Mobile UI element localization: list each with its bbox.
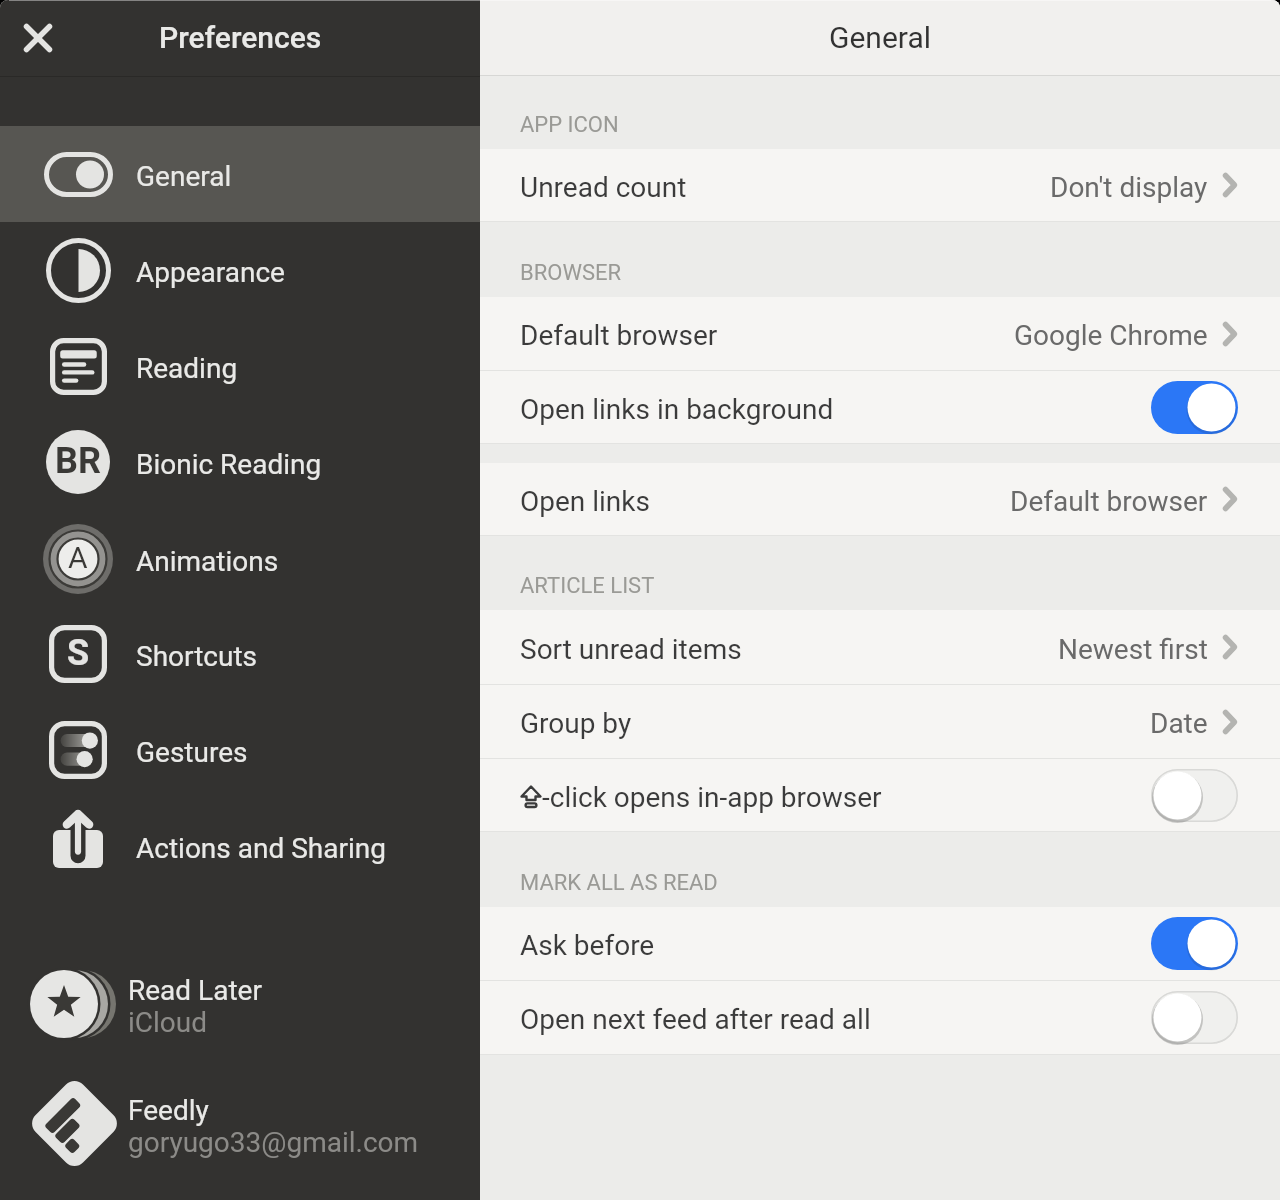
staticText: General (829, 20, 932, 55)
staticText: Ask before (520, 929, 655, 962)
staticText: Google Chrome (1014, 319, 1208, 352)
staticText: MARK ALL AS READ (520, 870, 718, 896)
button[interactable]: Read Later (0, 960, 480, 1048)
staticText: Newest first (1058, 633, 1208, 666)
staticText: Sort unread items (520, 633, 742, 666)
staticText: Appearance (136, 256, 285, 289)
staticText: Preferences (159, 20, 322, 55)
staticText: Reading (136, 352, 238, 385)
button[interactable]: Close (15, 15, 61, 61)
staticText: Group by (520, 707, 632, 740)
button[interactable]: Unread count (480, 149, 1280, 221)
button[interactable]: S (0, 606, 480, 702)
staticText: APP ICON (520, 112, 619, 138)
button[interactable]: Open links in background (480, 371, 1280, 443)
staticText: Date (1150, 707, 1208, 740)
staticText: Default browser (1010, 485, 1208, 518)
staticText: Animations (136, 545, 279, 578)
staticText: BROWSER (520, 260, 622, 286)
button[interactable]: Appearance (0, 222, 480, 318)
button[interactable]: Feedly (0, 1080, 480, 1168)
staticText: Default browser (520, 319, 718, 352)
staticText: BR (55, 440, 101, 482)
staticText: General (136, 160, 232, 193)
button[interactable]: -click opens in-app browser (480, 759, 1280, 831)
staticText: A (68, 540, 88, 575)
button[interactable]: Group by (480, 685, 1280, 758)
staticText: Read Later (128, 974, 262, 1007)
staticText: Don't display (1050, 171, 1208, 204)
button[interactable]: Open links (480, 463, 1280, 535)
button[interactable]: Gestures (0, 702, 480, 798)
staticText: Feedly (128, 1094, 209, 1127)
staticText: -click opens in-app browser (542, 781, 882, 814)
staticText: Shortcuts (136, 640, 258, 673)
staticText: Actions and Sharing (136, 832, 386, 865)
staticText: S (67, 632, 90, 674)
staticText: Bionic Reading (136, 448, 322, 481)
button[interactable]: Sort unread items (480, 610, 1280, 684)
button[interactable]: Open next feed after read all (480, 981, 1280, 1054)
button[interactable]: Ask before (480, 907, 1280, 980)
button[interactable]: On (1151, 381, 1238, 434)
staticText: goryugo33@gmail.com (128, 1126, 419, 1159)
button[interactable]: A (0, 511, 480, 607)
button[interactable]: Actions and Sharing (0, 798, 480, 894)
button[interactable]: General (0, 126, 480, 222)
button[interactable]: Default browser (480, 297, 1280, 370)
button[interactable]: On (1151, 917, 1238, 970)
button[interactable]: BR (0, 414, 480, 510)
button[interactable]: Off (1151, 991, 1238, 1044)
button[interactable]: Reading (0, 318, 480, 414)
staticText: Gestures (136, 736, 248, 769)
staticText: Open links in background (520, 393, 834, 426)
staticText: Open links (520, 485, 650, 518)
staticText: Unread count (520, 171, 687, 204)
staticText: iCloud (128, 1006, 208, 1039)
staticText: ARTICLE LIST (520, 573, 655, 599)
button[interactable]: Off (1151, 769, 1238, 822)
staticText: Open next feed after read all (520, 1003, 871, 1036)
